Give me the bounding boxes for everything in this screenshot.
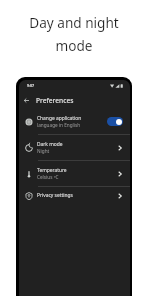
staticText: Day and night mode [29,13,119,55]
staticText: Celsius ºC [37,174,59,180]
staticText: Privacy settings [37,192,73,199]
button[interactable]: Privacy settings [19,187,130,204]
staticText: Night [37,148,50,154]
button[interactable]: Change application [19,109,130,134]
staticText: Change application [37,115,82,122]
button[interactable]: Back [21,95,32,106]
staticText: Dark mode [37,141,63,148]
staticText: Preferences [36,96,74,105]
button[interactable]: Temperature [19,161,130,186]
button[interactable]: Toggle language [107,117,123,126]
button[interactable]: Dark mode [19,135,130,160]
staticText: language in English [37,122,81,128]
staticText: Temperature [37,167,67,174]
staticText: 9:07 [27,83,35,88]
